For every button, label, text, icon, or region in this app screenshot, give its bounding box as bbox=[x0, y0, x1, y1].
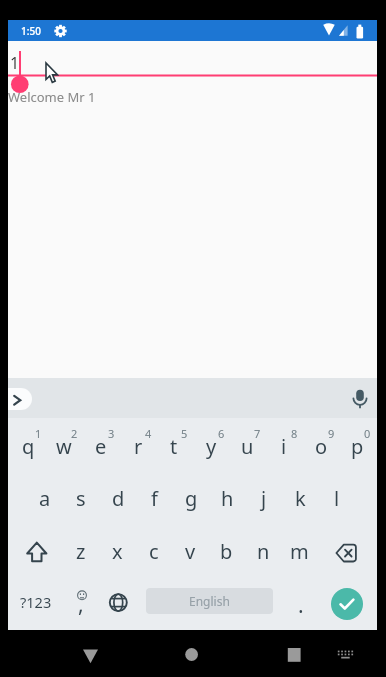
staticText: v bbox=[185, 538, 196, 565]
button[interactable]: w bbox=[46, 426, 82, 466]
button[interactable] bbox=[346, 385, 374, 413]
staticText: q bbox=[22, 433, 35, 460]
button[interactable]: g bbox=[173, 478, 209, 518]
button[interactable]: x bbox=[99, 531, 135, 571]
button[interactable]: , bbox=[63, 584, 99, 624]
button[interactable]: k bbox=[282, 478, 318, 518]
button[interactable] bbox=[22, 535, 52, 567]
staticText: 1 bbox=[10, 52, 20, 72]
staticText: h bbox=[221, 485, 234, 512]
button[interactable]: m bbox=[281, 531, 317, 571]
staticText: m bbox=[290, 538, 309, 565]
staticText: Welcome Mr 1 bbox=[8, 88, 96, 106]
staticText: 9 bbox=[328, 426, 335, 439]
staticText: 3 bbox=[108, 426, 115, 439]
staticText: 1:50 bbox=[21, 24, 41, 38]
staticText: 5 bbox=[181, 426, 188, 439]
staticText: i bbox=[281, 433, 287, 460]
staticText: j bbox=[261, 485, 267, 512]
staticText: a bbox=[39, 485, 51, 512]
staticText: 2 bbox=[71, 426, 78, 439]
staticText: k bbox=[295, 485, 306, 512]
button[interactable]: English bbox=[146, 588, 273, 614]
staticText: 6 bbox=[218, 426, 225, 439]
button[interactable]: h bbox=[209, 478, 245, 518]
staticText: English bbox=[189, 593, 230, 609]
button[interactable]: . bbox=[283, 585, 319, 625]
button[interactable]: o bbox=[303, 426, 339, 466]
staticText: 8 bbox=[291, 426, 298, 439]
staticText: u bbox=[241, 433, 254, 460]
button[interactable] bbox=[8, 41, 377, 378]
button[interactable]: e bbox=[83, 426, 119, 466]
staticText: 1 bbox=[35, 426, 42, 439]
button[interactable] bbox=[331, 535, 361, 567]
staticText: b bbox=[220, 538, 233, 565]
button[interactable]: b bbox=[208, 531, 244, 571]
staticText: g bbox=[185, 485, 198, 512]
staticText: e bbox=[95, 433, 107, 460]
button[interactable] bbox=[8, 388, 32, 410]
button[interactable]: a bbox=[27, 478, 63, 518]
staticText: x bbox=[112, 538, 123, 565]
button[interactable]: i bbox=[266, 426, 302, 466]
button[interactable]: j bbox=[246, 478, 282, 518]
button[interactable]: r bbox=[120, 426, 156, 466]
staticText: n bbox=[257, 538, 270, 565]
staticText: . bbox=[298, 591, 304, 620]
staticText: y bbox=[206, 433, 217, 460]
button[interactable] bbox=[72, 640, 108, 670]
button[interactable]: l bbox=[319, 478, 355, 518]
staticText: , bbox=[78, 590, 84, 619]
button[interactable]: d bbox=[100, 478, 136, 518]
staticText: ?123 bbox=[20, 592, 52, 612]
button[interactable]: n bbox=[245, 531, 281, 571]
button[interactable]: c bbox=[136, 531, 172, 571]
button[interactable]: f bbox=[136, 478, 172, 518]
staticText: o bbox=[315, 433, 328, 460]
button[interactable] bbox=[330, 642, 356, 668]
staticText: c bbox=[149, 538, 159, 565]
staticText: w bbox=[56, 433, 72, 460]
button[interactable]: y bbox=[193, 426, 229, 466]
staticText: d bbox=[112, 485, 125, 512]
button[interactable]: v bbox=[172, 531, 208, 571]
button[interactable]: s bbox=[63, 478, 99, 518]
button[interactable]: t bbox=[156, 426, 192, 466]
button[interactable] bbox=[276, 640, 312, 670]
staticText: p bbox=[351, 433, 364, 460]
button[interactable] bbox=[331, 588, 363, 620]
staticText: z bbox=[76, 538, 86, 565]
button[interactable]: z bbox=[63, 531, 99, 571]
button[interactable]: q bbox=[10, 426, 46, 466]
button[interactable]: u bbox=[229, 426, 265, 466]
button[interactable] bbox=[174, 640, 210, 670]
staticText: 7 bbox=[254, 426, 261, 439]
button[interactable]: p bbox=[339, 426, 375, 466]
staticText: t bbox=[170, 433, 178, 460]
staticText: r bbox=[134, 433, 143, 460]
staticText: l bbox=[334, 485, 340, 512]
button[interactable]: ?123 bbox=[14, 582, 58, 622]
staticText: s bbox=[76, 485, 86, 512]
staticText: f bbox=[151, 485, 158, 512]
staticText: 0 bbox=[364, 426, 371, 439]
staticText: 4 bbox=[145, 426, 152, 439]
